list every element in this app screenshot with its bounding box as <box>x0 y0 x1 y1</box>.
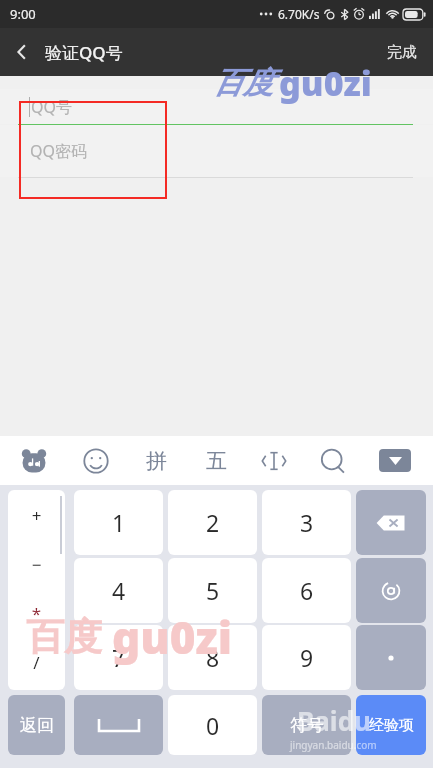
button[interactable]: 完成 <box>371 33 433 72</box>
button[interactable]: Cursor <box>257 444 291 478</box>
button[interactable]: 0 <box>168 695 257 755</box>
staticText: 符号 <box>290 715 324 736</box>
button[interactable]: Pinyin <box>139 444 173 478</box>
button[interactable]: 符号 <box>262 695 351 755</box>
button[interactable]: 8 <box>168 625 257 690</box>
staticText: 6 <box>300 575 314 606</box>
button[interactable]: 1 <box>74 490 163 555</box>
staticText: 返回 <box>20 715 54 736</box>
staticText: + <box>8 504 65 527</box>
button[interactable]: Hide keyboard <box>379 449 411 472</box>
button[interactable]: 9 <box>262 625 351 690</box>
staticText: 9 <box>300 642 314 673</box>
staticText: 百度 <box>213 64 273 102</box>
staticText: 8 <box>206 642 220 673</box>
staticText: QQ号 <box>31 96 72 118</box>
staticText: 1 <box>112 507 126 538</box>
staticText: QQ密码 <box>30 140 87 162</box>
staticText: 4 <box>112 575 126 606</box>
button[interactable]: Search <box>316 444 350 478</box>
staticText: 验证QQ号 <box>45 41 123 64</box>
staticText: 5 <box>206 575 220 606</box>
staticText: 2 <box>206 507 220 538</box>
staticText: 9:00 <box>10 5 36 23</box>
button[interactable]: 3 <box>262 490 351 555</box>
staticText: 7 <box>112 642 126 673</box>
button[interactable]: 经验项 <box>356 695 426 755</box>
button[interactable]: Emoji <box>79 444 113 478</box>
button[interactable]: 5 <box>168 558 257 623</box>
button[interactable]: Baidu input <box>17 444 51 478</box>
button[interactable]: Space <box>74 695 163 755</box>
staticText: 完成 <box>387 43 417 62</box>
button[interactable]: At sign <box>356 558 426 623</box>
staticText: 拼 <box>146 448 167 474</box>
staticText: Baidu <box>297 703 371 738</box>
button[interactable]: Backspace <box>356 490 426 555</box>
button[interactable]: Wubi <box>199 444 233 478</box>
staticText: 百度 <box>26 613 102 661</box>
button[interactable]: Operators <box>8 490 65 690</box>
staticText: gu0zi <box>279 60 372 106</box>
button[interactable]: 7 <box>74 625 163 690</box>
staticText: / <box>8 651 65 674</box>
staticText: 0 <box>206 710 220 741</box>
button[interactable]: 4 <box>74 558 163 623</box>
button[interactable]: Back <box>0 30 44 74</box>
button[interactable]: QQ密码 <box>0 125 433 177</box>
button[interactable]: 2 <box>168 490 257 555</box>
staticText: 五 <box>206 448 227 474</box>
staticText: 经验项 <box>369 716 414 735</box>
staticText: − <box>8 553 65 576</box>
staticText: gu0zi <box>112 607 233 667</box>
button[interactable]: QQ号 <box>0 89 433 124</box>
staticText: jingyan.baidu.com <box>290 738 377 752</box>
staticText: 6.70K/s <box>278 6 320 22</box>
staticText: * <box>8 602 65 625</box>
button[interactable]: 返回 <box>8 695 65 755</box>
button[interactable]: 6 <box>262 558 351 623</box>
button[interactable]: Period <box>356 625 426 690</box>
staticText: 3 <box>300 507 314 538</box>
